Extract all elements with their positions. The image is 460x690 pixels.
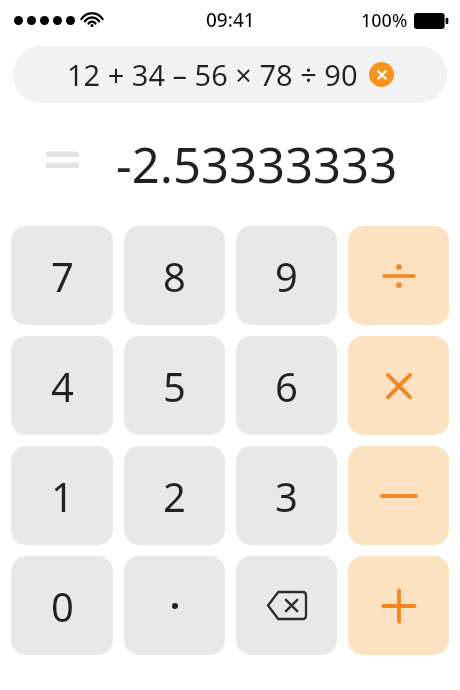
- staticText: 1: [51, 469, 74, 523]
- staticText: 8: [163, 249, 186, 303]
- button[interactable]: Decimal point: [124, 556, 225, 655]
- button[interactable]: Subtract: [348, 446, 449, 545]
- button[interactable]: 8: [124, 226, 225, 325]
- staticText: 5: [163, 359, 186, 413]
- button[interactable]: 0: [11, 556, 113, 655]
- button[interactable]: Multiply: [348, 336, 449, 435]
- button[interactable]: 9: [236, 226, 337, 325]
- button[interactable]: Divide: [348, 226, 449, 325]
- staticText: 12 + 34 – 56 × 78 ÷ 90: [67, 55, 358, 94]
- button[interactable]: 2: [124, 446, 225, 545]
- staticText: 7: [51, 249, 74, 303]
- button[interactable]: 1: [11, 446, 113, 545]
- button[interactable]: 6: [236, 336, 337, 435]
- staticText: -2.53333333: [116, 131, 398, 187]
- staticText: 9: [275, 249, 298, 303]
- staticText: 4: [51, 359, 74, 413]
- button[interactable]: 4: [11, 336, 113, 435]
- staticText: 09:41: [206, 7, 255, 33]
- staticText: 0: [51, 579, 74, 633]
- button[interactable]: Clear expression: [369, 62, 394, 87]
- button[interactable]: 3: [236, 446, 337, 545]
- staticText: 100%: [361, 8, 408, 33]
- staticText: 2: [163, 469, 186, 523]
- button[interactable]: 7: [11, 226, 113, 325]
- button[interactable]: Add: [348, 556, 449, 655]
- staticText: 6: [275, 359, 298, 413]
- staticText: 3: [275, 469, 298, 523]
- button[interactable]: 12 + 34 – 56 × 78 ÷ 90: [13, 46, 447, 103]
- button[interactable]: Backspace: [236, 556, 337, 655]
- button[interactable]: 5: [124, 336, 225, 435]
